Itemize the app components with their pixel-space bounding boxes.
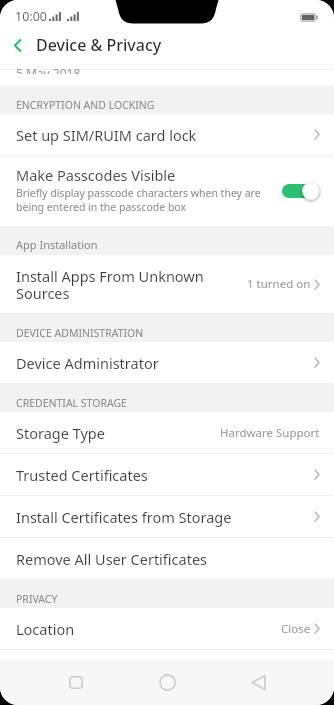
staticText: ENCRYPTION AND LOCKING	[16, 98, 155, 112]
staticText: Hardware Support	[220, 425, 320, 441]
staticText: DEVICE ADMINISTRATION	[16, 326, 144, 340]
staticText: Storage Type	[16, 423, 220, 443]
button[interactable]: Install Apps From Unknown Sources	[0, 255, 334, 314]
button[interactable]: Install Certificates from Storage	[0, 496, 334, 538]
button[interactable]: Back	[0, 28, 34, 62]
staticText: Trusted Certificates	[16, 465, 314, 485]
button[interactable]: Back	[235, 660, 281, 705]
staticText: Set up SIM/RUIM card lock	[16, 125, 314, 145]
staticText: App Installation	[16, 237, 98, 252]
button[interactable]: Remove All User Certificates	[0, 538, 334, 580]
staticText: 1 turned on	[247, 276, 311, 292]
staticText: Device & Privacy	[36, 34, 162, 56]
staticText: 5 May 2018	[16, 66, 81, 74]
staticText: 10:00	[15, 8, 47, 25]
button[interactable]: Location	[0, 608, 334, 650]
button[interactable]: Make Passcodes Visible	[0, 156, 334, 226]
button[interactable]: Home	[144, 660, 190, 705]
staticText: Install Apps From Unknown Sources	[16, 266, 247, 303]
staticText: PRIVACY	[16, 592, 58, 606]
staticText: Install Certificates from Storage	[16, 507, 314, 527]
button[interactable]: Set up SIM/RUIM card lock	[0, 114, 334, 156]
button[interactable]: Make Passcodes Visible toggle	[282, 180, 320, 202]
button[interactable]: Storage Type	[0, 412, 334, 454]
staticText: Close	[281, 621, 311, 637]
staticText: Briefly display passcode characters when…	[16, 186, 261, 214]
staticText: Device Administrator	[16, 353, 314, 373]
staticText: Location	[16, 619, 281, 639]
staticText: Remove All User Certificates	[16, 549, 320, 569]
staticText: CREDENTIAL STORAGE	[16, 396, 127, 410]
staticText: Make Passcodes Visible	[16, 165, 176, 185]
button[interactable]: Device Administrator	[0, 342, 334, 384]
button[interactable]: Recents	[53, 660, 99, 705]
button[interactable]: Trusted Certificates	[0, 454, 334, 496]
